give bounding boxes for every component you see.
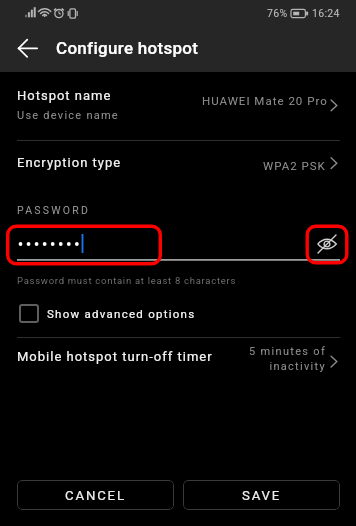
- staticText: 76%: [267, 7, 288, 19]
- button[interactable]: Back: [10, 30, 48, 68]
- staticText: HUAWEI Mate 20 Pro: [202, 94, 328, 107]
- button[interactable]: [0, 72, 356, 140]
- staticText: Password must contain at least 8 charact…: [17, 275, 237, 286]
- button[interactable]: CANCEL: [17, 480, 174, 510]
- staticText: Hotspot name: [17, 88, 112, 103]
- staticText: SAVE: [242, 488, 282, 503]
- button[interactable]: SAVE: [183, 480, 340, 510]
- staticText: Encryption type: [17, 155, 122, 170]
- staticText: Configure hotspot: [56, 38, 199, 58]
- button[interactable]: Show advanced options: [0, 297, 356, 330]
- button[interactable]: [0, 338, 356, 386]
- button[interactable]: Hide password: [313, 230, 341, 258]
- staticText: WPA2 PSK: [263, 159, 326, 172]
- staticText: Use device name: [17, 109, 119, 122]
- staticText: PASSWORD: [17, 204, 91, 216]
- staticText: 5 minutes of inactivity: [249, 345, 326, 373]
- button[interactable]: [0, 141, 356, 191]
- staticText: 16:24: [312, 7, 340, 19]
- staticText: Mobile hotspot turn-off timer: [17, 349, 213, 364]
- staticText: CANCEL: [65, 488, 126, 503]
- staticText: Show advanced options: [47, 307, 196, 320]
